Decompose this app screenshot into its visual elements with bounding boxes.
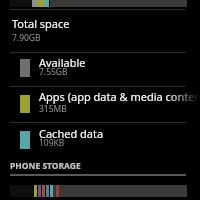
button[interactable]: Apps (app data & media content) xyxy=(0,87,200,122)
staticText: 7.55GB xyxy=(39,66,68,78)
staticText: PHONE STORAGE xyxy=(10,160,81,172)
staticText: Cached data xyxy=(39,126,104,141)
button[interactable]: Available xyxy=(0,53,200,86)
staticText: Apps (app data & media content) xyxy=(39,89,200,104)
staticText: 315MB xyxy=(39,103,67,115)
button[interactable]: Total space xyxy=(0,10,200,52)
staticText: 7.90GB xyxy=(12,32,41,44)
staticText: Total space xyxy=(12,16,70,31)
button[interactable]: Cached data xyxy=(0,123,200,158)
staticText: 109KB xyxy=(39,137,65,149)
staticText: Available xyxy=(39,55,86,70)
